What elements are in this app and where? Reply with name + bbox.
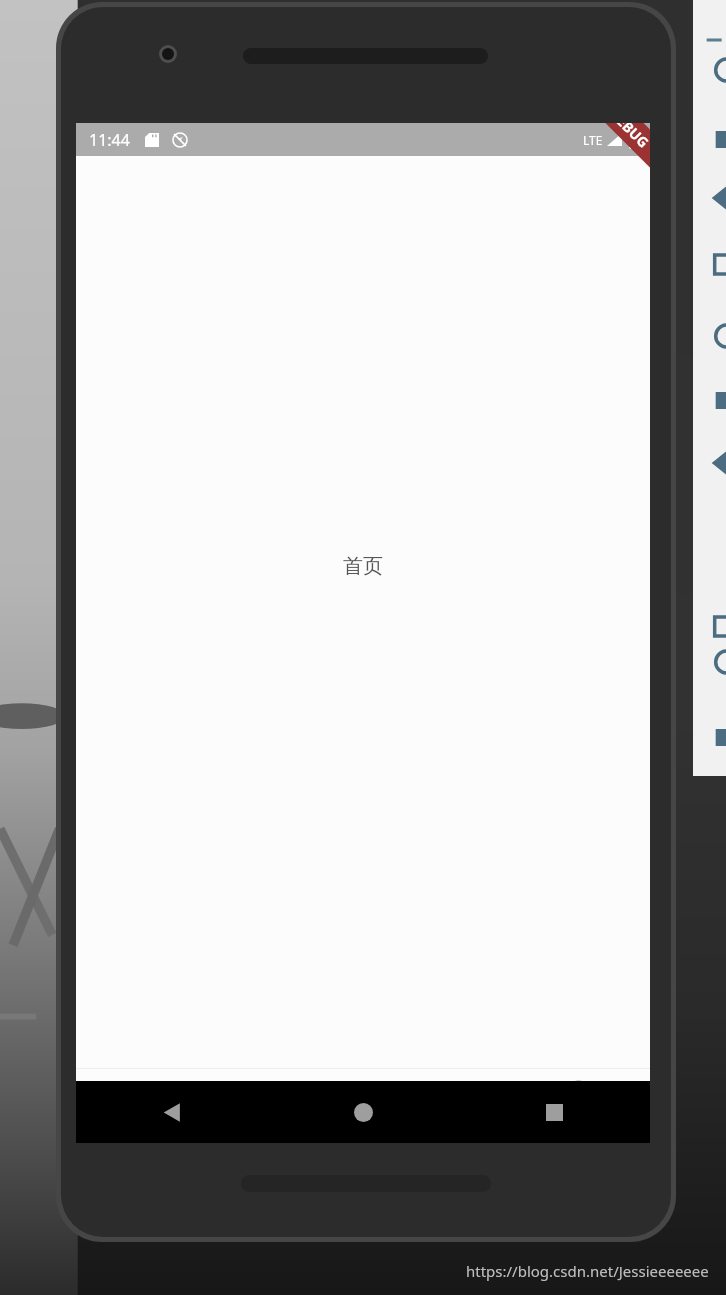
button[interactable]: 我的 [506, 1069, 650, 1143]
staticText: 我的 [562, 1114, 594, 1134]
staticText: https://blog.csdn.net/Jessieeeeeee [466, 1261, 709, 1281]
button[interactable]: 旅拍 [362, 1069, 506, 1143]
staticText: DEBUG [605, 123, 650, 152]
staticText: 首页 [343, 554, 383, 579]
button[interactable]: 首页 [76, 1069, 219, 1143]
button[interactable]: 搜索 [219, 1069, 362, 1143]
staticText: LTE [583, 132, 603, 148]
button[interactable]: Recent apps [459, 1081, 650, 1143]
staticText: 11:44 [89, 129, 130, 151]
button[interactable]: Back [76, 1081, 268, 1143]
button[interactable]: Home [268, 1081, 459, 1143]
